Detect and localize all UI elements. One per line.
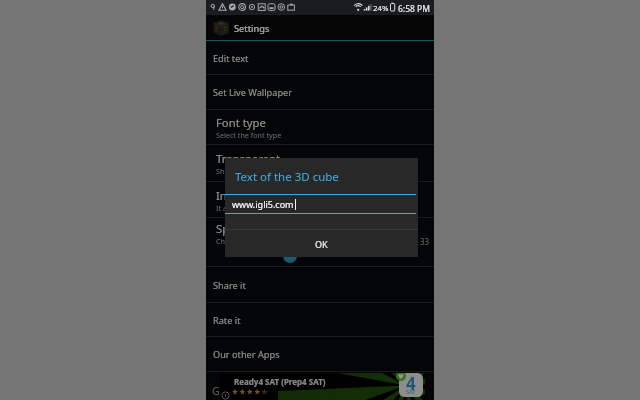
staticText: Select the font type: [216, 130, 282, 140]
staticText: Set Live Wallpaper: [213, 86, 293, 99]
staticText: Share it: [213, 279, 246, 292]
staticText: OK: [315, 238, 328, 250]
staticText: 6:58 PM: [398, 3, 430, 15]
staticText: Rate it: [213, 314, 241, 327]
staticText: 4: [406, 373, 416, 395]
staticText: Edit text: [213, 52, 249, 65]
staticText: Intensity: [216, 188, 263, 203]
staticText: Font type: [216, 115, 266, 130]
button[interactable]: OK: [225, 230, 418, 257]
button[interactable]: Speed: [206, 218, 434, 267]
staticText: www.igli5.com: [232, 198, 294, 210]
staticText: 33: [420, 236, 430, 247]
button[interactable]: Our other Apps: [206, 337, 434, 372]
staticText: Change the speed: [216, 236, 278, 246]
other: App icon: [212, 19, 230, 37]
staticText: Ready4 SAT (Prep4 SAT): [234, 376, 326, 387]
staticText: It also changes: [216, 203, 267, 213]
staticText: Show transparency: [216, 166, 281, 176]
staticText: SAT: [406, 388, 416, 395]
button[interactable]: Share it: [206, 267, 434, 303]
staticText: Our other Apps: [213, 348, 280, 361]
staticText: G: [212, 384, 220, 398]
button[interactable]: Set Live Wallpaper: [206, 75, 434, 110]
staticText: Transparent: [216, 151, 281, 166]
staticText: Settings: [234, 22, 270, 35]
staticText: Text of the 3D cube: [235, 169, 339, 185]
staticText: 24%: [373, 3, 389, 14]
button[interactable]: Intensity: [206, 182, 434, 218]
button[interactable]: Transparent: [206, 145, 434, 182]
staticText: Speed: [216, 221, 249, 236]
button[interactable]: Edit text: [206, 41, 434, 75]
button[interactable]: Rate it: [206, 303, 434, 337]
button[interactable]: Ready4 SAT (Prep4 SAT): [220, 373, 425, 400]
button[interactable]: Font type: [206, 110, 434, 145]
